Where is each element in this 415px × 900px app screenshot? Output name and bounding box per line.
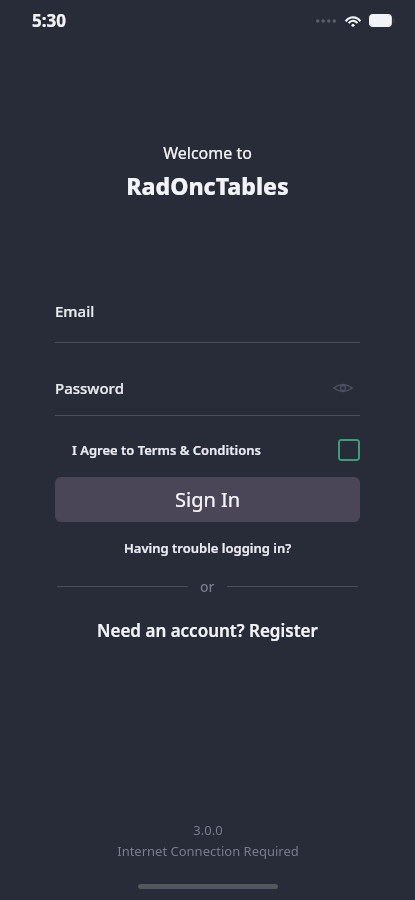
staticText: Welcome to — [163, 142, 252, 164]
staticText: or — [200, 577, 215, 596]
button[interactable]: I Agree to Terms & Conditions — [55, 439, 360, 461]
staticText: Email — [55, 301, 95, 321]
staticText: Sign In — [175, 486, 241, 513]
button[interactable]: Sign In — [55, 477, 360, 522]
staticText: 5:30 — [32, 9, 66, 32]
button[interactable]: Password — [55, 378, 326, 398]
staticText: RadOncTables — [126, 170, 289, 201]
button[interactable]: Show password — [326, 371, 360, 405]
button[interactable]: Having trouble logging in? — [114, 535, 302, 561]
button[interactable]: Email — [55, 301, 360, 343]
staticText: I Agree to Terms & Conditions — [72, 441, 261, 459]
staticText: Having trouble logging in? — [124, 539, 292, 557]
staticText: Internet Connection Required — [117, 842, 299, 860]
button[interactable]: Need an account? Register — [85, 614, 330, 647]
staticText: 3.0.0 — [193, 821, 223, 839]
staticText: Need an account? Register — [97, 619, 318, 642]
staticText: Password — [55, 378, 124, 398]
